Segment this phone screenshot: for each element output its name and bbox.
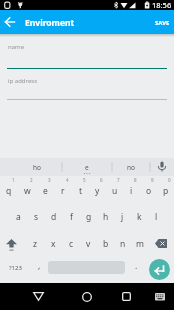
staticText: r: [61, 185, 65, 197]
staticText: 4: [66, 177, 69, 183]
staticText: 7: [117, 177, 120, 183]
staticText: p: [163, 185, 169, 197]
staticText: Enviroment: [25, 17, 75, 29]
button[interactable]: h: [97, 203, 114, 230]
button[interactable]: [112, 283, 140, 310]
staticText: no: [127, 163, 135, 172]
staticText: v: [86, 238, 91, 250]
staticText: y: [95, 185, 100, 197]
button[interactable]: SAVE: [155, 19, 170, 27]
staticText: g: [86, 211, 92, 223]
button[interactable]: ho: [12, 158, 62, 176]
staticText: ip address: [8, 77, 38, 85]
button[interactable]: 9: [140, 176, 157, 203]
button[interactable]: [24, 283, 52, 310]
staticText: SAVE: [155, 19, 170, 27]
staticText: f: [70, 211, 73, 223]
button[interactable]: a: [9, 203, 27, 230]
staticText: 0: [168, 177, 171, 183]
staticText: e: [43, 185, 48, 197]
staticText: 5: [83, 177, 86, 183]
button[interactable]: ip address: [8, 77, 38, 85]
button[interactable]: name: [8, 43, 25, 51]
staticText: e: [85, 163, 89, 172]
button[interactable]: [148, 283, 171, 310]
button[interactable]: ,: [33, 257, 45, 283]
staticText: s: [34, 211, 39, 223]
staticText: m: [136, 238, 144, 250]
staticText: i: [130, 185, 133, 197]
button[interactable]: l: [148, 203, 165, 230]
staticText: .: [135, 260, 138, 272]
staticText: w: [24, 185, 31, 197]
staticText: o: [146, 185, 152, 197]
button[interactable]: [73, 283, 101, 310]
staticText: name: [8, 43, 25, 51]
button[interactable]: 8: [123, 176, 140, 203]
button[interactable]: 4: [54, 176, 72, 203]
staticText: 18:56: [152, 0, 172, 10]
button[interactable]: [149, 259, 170, 280]
staticText: 3: [48, 177, 51, 183]
button[interactable]: e: [62, 158, 112, 176]
staticText: u: [112, 185, 118, 197]
staticText: 9: [151, 177, 154, 183]
staticText: 6: [100, 177, 103, 183]
staticText: b: [103, 238, 109, 250]
staticText: l: [155, 211, 158, 223]
staticText: ho: [33, 163, 41, 172]
button[interactable]: j: [114, 203, 131, 230]
button[interactable]: 6: [89, 176, 106, 203]
staticText: d: [51, 211, 57, 223]
button[interactable]: v: [80, 230, 97, 257]
staticText: c: [69, 238, 74, 250]
button[interactable]: n: [114, 230, 131, 257]
staticText: 8: [134, 177, 137, 183]
staticText: q: [6, 185, 12, 197]
button[interactable]: k: [131, 203, 148, 230]
button[interactable]: [148, 230, 174, 257]
staticText: 2: [30, 177, 33, 183]
button[interactable]: [150, 158, 174, 176]
button[interactable]: 1: [0, 176, 18, 203]
staticText: 1: [12, 177, 15, 183]
button[interactable]: [0, 10, 20, 34]
staticText: z: [33, 238, 37, 250]
button[interactable]: z: [26, 230, 44, 257]
button[interactable]: s: [27, 203, 45, 230]
button[interactable]: b: [97, 230, 114, 257]
button[interactable]: 2: [18, 176, 36, 203]
button[interactable]: ?123: [0, 257, 30, 283]
staticText: h: [103, 211, 109, 223]
staticText: k: [137, 211, 142, 223]
staticText: x: [51, 238, 56, 250]
button[interactable]: no: [112, 158, 150, 176]
staticText: j: [121, 211, 124, 223]
button[interactable]: f: [63, 203, 80, 230]
button[interactable]: 0: [157, 176, 174, 203]
button[interactable]: 3: [36, 176, 54, 203]
button[interactable]: m: [131, 230, 148, 257]
button[interactable]: 5: [72, 176, 89, 203]
staticText: n: [120, 238, 126, 250]
staticText: t: [79, 185, 83, 197]
staticText: ,: [38, 260, 41, 272]
button[interactable]: 7: [106, 176, 123, 203]
button[interactable]: d: [45, 203, 63, 230]
button[interactable]: g: [80, 203, 97, 230]
button[interactable]: .: [130, 257, 142, 283]
button[interactable]: x: [44, 230, 62, 257]
button[interactable]: [0, 230, 26, 257]
staticText: ?123: [9, 264, 22, 272]
staticText: a: [16, 211, 21, 223]
button[interactable]: c: [62, 230, 80, 257]
